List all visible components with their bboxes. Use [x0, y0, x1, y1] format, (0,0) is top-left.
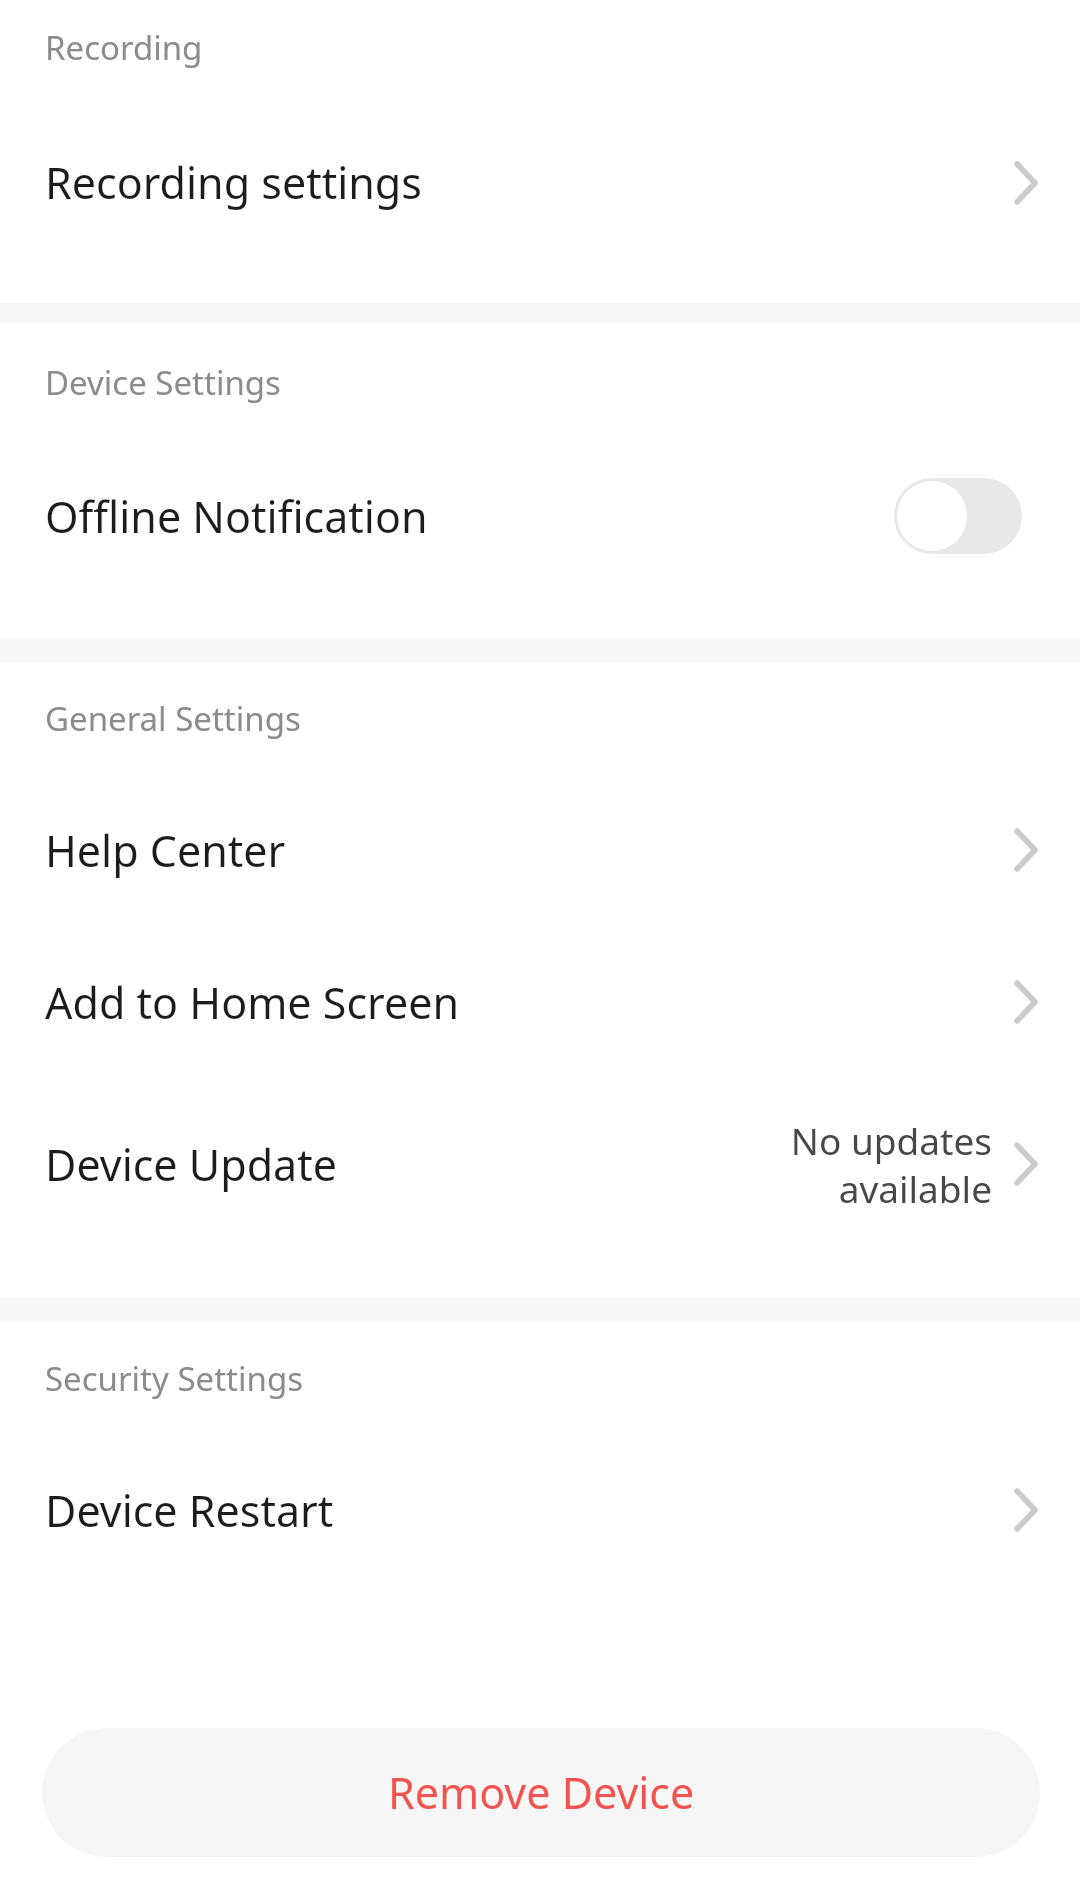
- button[interactable]: Device Restart: [0, 1434, 1080, 1586]
- staticText: Offline Notification: [45, 487, 428, 546]
- staticText: Help Center: [45, 821, 286, 880]
- staticText: Remove Device: [388, 1763, 695, 1822]
- staticText: Device Restart: [45, 1481, 334, 1540]
- staticText: No updates available: [790, 1115, 992, 1214]
- button[interactable]: Offline Notification: [0, 441, 1080, 591]
- staticText: Recording: [45, 25, 203, 70]
- staticText: Device Update: [45, 1135, 338, 1194]
- button[interactable]: Device Update: [0, 1078, 1080, 1250]
- button[interactable]: Offline Notification toggle, off: [894, 478, 1022, 554]
- staticText: Device Settings: [45, 360, 281, 405]
- button[interactable]: Recording settings: [0, 95, 1080, 270]
- staticText: Security Settings: [45, 1356, 303, 1401]
- button[interactable]: Help Center: [0, 774, 1080, 926]
- staticText: Recording settings: [45, 153, 422, 212]
- button[interactable]: Add to Home Screen: [0, 926, 1080, 1078]
- button[interactable]: Remove Device: [42, 1728, 1040, 1857]
- staticText: General Settings: [45, 696, 301, 741]
- staticText: Add to Home Screen: [45, 973, 460, 1032]
